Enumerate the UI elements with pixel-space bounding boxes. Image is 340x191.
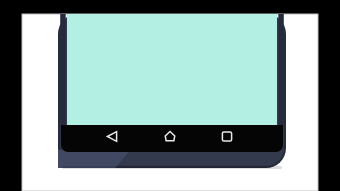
button[interactable]: Android phone illustration — [0, 0, 340, 191]
